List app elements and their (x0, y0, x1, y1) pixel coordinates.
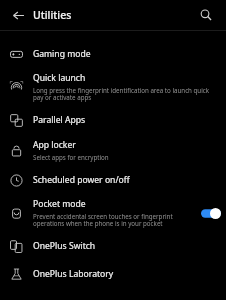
staticText: Gaming mode (33, 48, 91, 60)
button[interactable]: Scheduled power on/off (0, 166, 226, 194)
staticText: OnePlus Laboratory (33, 268, 114, 280)
staticText: Select apps for encryption (33, 153, 109, 161)
staticText: Quick launch (33, 72, 86, 84)
button[interactable]: Gaming mode (0, 40, 226, 68)
staticText: Parallel Apps (33, 114, 86, 126)
button[interactable]: Back (6, 3, 30, 27)
staticText: Long press the fingerprint identificatio… (33, 86, 218, 102)
staticText: Prevent accidental screen touches or fin… (33, 212, 192, 228)
button[interactable]: OnePlus Switch (0, 232, 226, 260)
button[interactable] (196, 203, 226, 223)
button[interactable]: OnePlus Laboratory (0, 260, 226, 288)
button[interactable]: Pocket mode (0, 194, 226, 232)
staticText: Scheduled power on/off (33, 174, 130, 186)
button[interactable]: Quick launch (0, 68, 226, 106)
staticText: App locker (33, 139, 76, 151)
button[interactable]: App locker (0, 134, 226, 166)
staticText: OnePlus Switch (33, 240, 96, 252)
button[interactable]: Parallel Apps (0, 106, 226, 134)
button[interactable]: Search (194, 3, 218, 27)
staticText: Utilities (33, 8, 72, 22)
staticText: Pocket mode (33, 198, 86, 210)
